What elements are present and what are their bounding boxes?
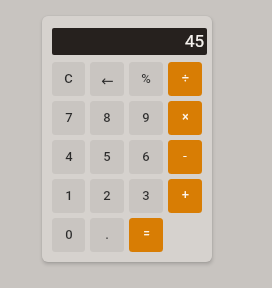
- button[interactable]: 9: [129, 101, 163, 135]
- staticText: 0: [65, 227, 73, 242]
- staticText: 45: [185, 31, 205, 51]
- button[interactable]: 2: [90, 179, 124, 213]
- staticText: ←: [101, 72, 114, 89]
- staticText: 3: [142, 188, 150, 203]
- button[interactable]: Subtract: [168, 140, 202, 174]
- button[interactable]: Multiply: [168, 101, 202, 135]
- staticText: 8: [103, 110, 111, 125]
- button[interactable]: 1: [52, 179, 85, 213]
- staticText: 7: [65, 110, 73, 125]
- button[interactable]: 4: [52, 140, 85, 174]
- button[interactable]: 8: [90, 101, 124, 135]
- staticText: 4: [65, 149, 73, 164]
- button[interactable]: 6: [129, 140, 163, 174]
- staticText: ×: [182, 110, 189, 124]
- staticText: 1: [65, 188, 73, 203]
- button[interactable]: Backspace: [90, 62, 124, 96]
- staticText: -: [183, 149, 187, 163]
- button[interactable]: Decimal point: [90, 218, 124, 252]
- staticText: %: [141, 71, 151, 86]
- staticText: ÷: [182, 71, 189, 85]
- staticText: 9: [142, 110, 150, 125]
- button[interactable]: 5: [90, 140, 124, 174]
- button[interactable]: Equals: [129, 218, 163, 252]
- staticText: =: [143, 227, 150, 241]
- staticText: C: [64, 71, 73, 86]
- staticText: .: [105, 227, 109, 242]
- button[interactable]: Add: [168, 179, 202, 213]
- staticText: 6: [142, 149, 150, 164]
- button[interactable]: Percent: [129, 62, 163, 96]
- staticText: +: [182, 188, 189, 202]
- button[interactable]: 0: [52, 218, 85, 252]
- button[interactable]: 3: [129, 179, 163, 213]
- staticText: 2: [103, 188, 111, 203]
- button[interactable]: 7: [52, 101, 85, 135]
- staticText: 5: [103, 149, 111, 164]
- button[interactable]: Divide: [168, 62, 202, 96]
- button[interactable]: Clear: [52, 62, 85, 96]
